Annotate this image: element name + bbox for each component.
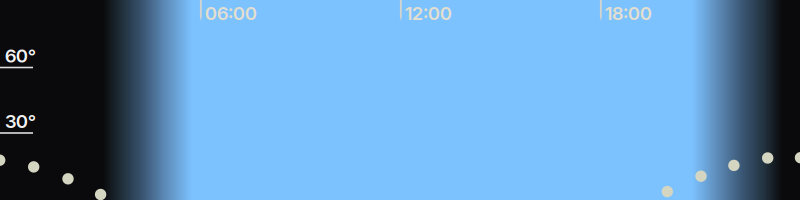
staticText: 06:00 (205, 2, 257, 25)
staticText: 60° (5, 44, 36, 67)
button[interactable]: Sun position chart (0, 0, 800, 200)
staticText: 30° (5, 110, 36, 133)
staticText: 18:00 (605, 2, 652, 25)
staticText: 12:00 (405, 2, 452, 25)
